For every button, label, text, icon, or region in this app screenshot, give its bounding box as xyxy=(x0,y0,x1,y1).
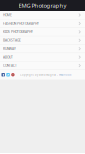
staticText: Copyright by Elena Mugnai - xyxy=(20,73,59,76)
staticText: EMG Photography xyxy=(18,2,66,9)
button[interactable]: CONTACT xyxy=(0,61,85,70)
staticText: RUNWAY xyxy=(3,46,16,51)
staticText: KIDS PHOTOGRAPHY xyxy=(3,30,33,34)
button[interactable]: KIDS PHOTOGRAPHY xyxy=(0,28,85,36)
staticText: HOME xyxy=(3,13,12,17)
staticText: CONTACT xyxy=(3,63,17,68)
button[interactable]: BACKSTAGE xyxy=(0,36,85,45)
staticText: BACKSTAGE xyxy=(3,38,21,42)
button[interactable]: FASHION PHOTOGRAPHY xyxy=(0,19,85,28)
button[interactable]: Webnode xyxy=(59,73,71,76)
button[interactable]: RUNWAY xyxy=(0,45,85,53)
staticText: ABOUT xyxy=(3,55,13,59)
staticText: FASHION PHOTOGRAPHY xyxy=(3,21,39,26)
button[interactable]: Facebook xyxy=(1,73,5,76)
button[interactable]: ABOUT xyxy=(0,53,85,61)
staticText: Webnode xyxy=(59,73,71,76)
button[interactable]: Pinterest xyxy=(11,73,15,76)
button[interactable]: HOME xyxy=(0,11,85,19)
button[interactable]: Twitter xyxy=(6,73,10,76)
